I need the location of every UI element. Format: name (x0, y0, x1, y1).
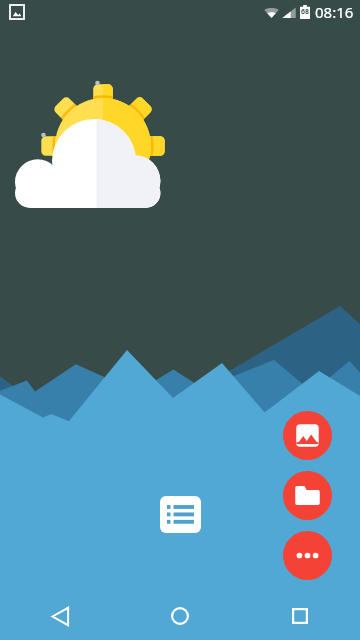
button[interactable]: More (283, 531, 332, 580)
staticText: 08:16 (315, 2, 354, 22)
staticText: 68 (301, 7, 310, 17)
button[interactable]: Files (283, 471, 332, 520)
button[interactable]: Back (0, 592, 120, 640)
button[interactable]: Gallery (283, 411, 332, 460)
button[interactable]: Recent apps (240, 592, 360, 640)
other: Screenshot (10, 5, 24, 19)
button[interactable]: All apps list (160, 496, 201, 533)
button[interactable]: Home (120, 592, 240, 640)
